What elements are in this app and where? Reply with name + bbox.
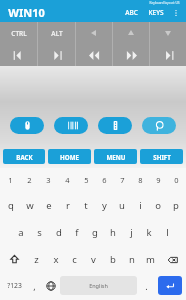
staticText: ABC [125,8,138,17]
staticText: i [139,199,142,212]
button[interactable]: m [141,246,160,273]
button[interactable]: b [103,246,122,273]
staticText: ALT [51,29,63,38]
button[interactable]: n [122,246,141,273]
button[interactable]: e [39,192,58,219]
button[interactable]: i [131,192,149,219]
staticText: d [56,226,62,239]
button[interactable]: More options [169,6,183,20]
button[interactable]: KEYS [143,5,169,20]
button[interactable]: 4 [58,168,77,192]
button[interactable]: w [20,192,39,219]
button[interactable]: 9 [149,168,167,192]
button[interactable]: d [49,219,68,246]
staticText: 6 [102,175,107,185]
button[interactable]: 2 [20,168,39,192]
button[interactable]: j [122,219,140,246]
button[interactable]: 3 [39,168,58,192]
staticText: 1 [8,175,13,185]
button[interactable]: z [27,246,46,273]
button[interactable]: v [84,246,103,273]
button[interactable]: English [60,276,137,295]
button[interactable]: Barcode [54,117,88,134]
button[interactable]: Up arrow [113,22,149,44]
button[interactable]: Left arrow [76,22,112,44]
button[interactable]: MENU [94,149,137,164]
button[interactable]: Rewind [76,44,112,66]
staticText: 3 [46,175,51,185]
staticText: SHIFT [153,153,171,161]
button[interactable]: BACK [3,149,45,164]
staticText: MENU [106,153,126,161]
button[interactable]: Next [38,44,75,66]
button[interactable]: Play [150,44,186,66]
staticText: 0 [174,175,179,185]
button[interactable]: s [30,219,49,246]
button[interactable]: Backspace [160,246,185,273]
button[interactable]: . [137,273,155,298]
button[interactable]: y [95,192,113,219]
staticText: KEYS [148,8,164,17]
staticText: 5 [84,175,89,185]
button[interactable]: 6 [95,168,113,192]
button[interactable]: Touchpad [142,117,176,134]
staticText: Keyboard layout: US [149,1,180,5]
button[interactable]: SHIFT [140,149,183,164]
button[interactable]: h [104,219,122,246]
button[interactable]: ALT [38,22,75,44]
button[interactable]: 0 [167,168,185,192]
button[interactable]: q [1,192,20,219]
button[interactable]: Mouse [10,117,44,134]
button[interactable]: 5 [77,168,95,192]
button[interactable]: Shift [1,246,27,273]
staticText: 7 [120,175,125,185]
button[interactable]: f [68,219,86,246]
staticText: HOME [60,153,79,161]
button[interactable]: CTRL [0,22,37,44]
staticText: 9 [156,175,161,185]
button[interactable]: Language [42,273,60,298]
button[interactable]: HOME [48,149,91,164]
staticText: w [26,199,34,212]
button[interactable]: , [27,273,42,298]
button[interactable]: 1 [1,168,20,192]
staticText: a [18,226,24,239]
staticText: g [92,226,98,239]
button[interactable]: Down arrow [150,22,186,44]
staticText: , [33,280,36,292]
staticText: . [145,280,148,292]
staticText: ?123 [7,281,22,290]
staticText: c [72,253,77,266]
button[interactable]: p [167,192,185,219]
button[interactable]: ABC [120,5,143,20]
staticText: s [37,226,42,239]
staticText: 2 [27,175,32,185]
button[interactable]: k [140,219,158,246]
button[interactable]: Enter [158,276,182,295]
button[interactable]: Remote [98,117,132,134]
button[interactable]: o [149,192,167,219]
button[interactable]: c [65,246,84,273]
staticText: 4 [65,175,70,185]
button[interactable]: ?123 [1,273,27,298]
staticText: u [119,199,125,212]
button[interactable]: Previous [0,44,37,66]
button[interactable]: a [11,219,30,246]
staticText: y [102,199,107,212]
staticText: p [173,199,179,212]
staticText: q [8,199,14,212]
button[interactable]: x [46,246,65,273]
staticText: BACK [16,153,33,161]
button[interactable]: 8 [131,168,149,192]
staticText: CTRL [11,29,27,38]
button[interactable]: u [113,192,131,219]
button[interactable]: Fast forward [113,44,149,66]
staticText: WIN10 [8,5,45,20]
staticText: n [129,253,135,266]
button[interactable]: 7 [113,168,131,192]
button[interactable]: g [86,219,104,246]
button[interactable]: t [77,192,95,219]
button[interactable]: r [58,192,77,219]
button[interactable]: l [158,219,176,246]
staticText: j [130,226,133,239]
